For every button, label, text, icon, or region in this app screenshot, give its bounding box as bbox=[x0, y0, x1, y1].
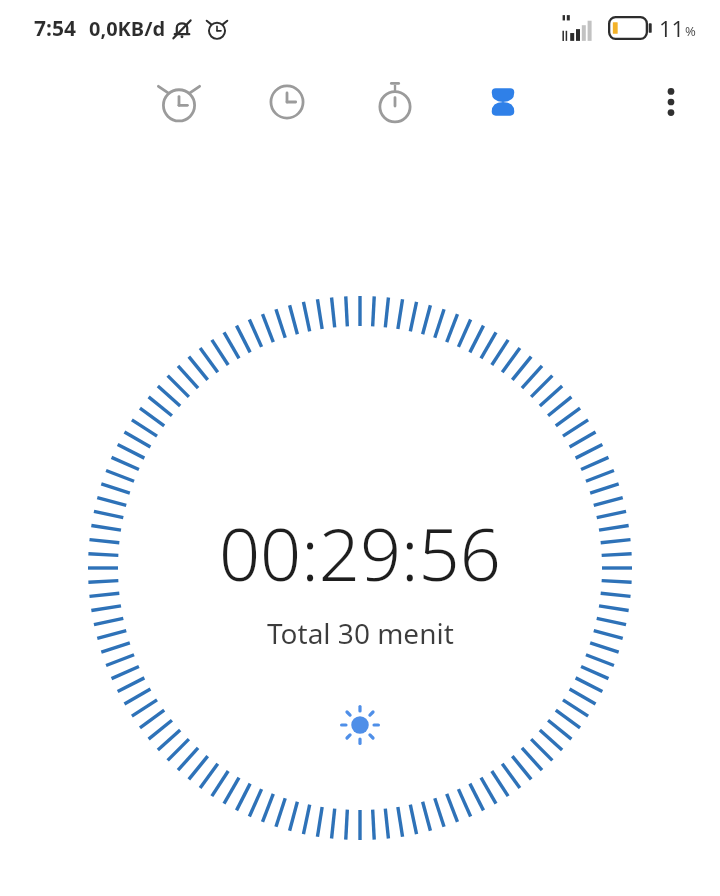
button[interactable]: World clock bbox=[256, 71, 318, 133]
staticText: 0,0KB/d bbox=[89, 15, 166, 42]
button[interactable]: Timer bbox=[472, 71, 534, 133]
staticText: 7:54 bbox=[34, 14, 76, 43]
staticText: 00:29:56 bbox=[219, 504, 501, 602]
button[interactable]: Screen brightness bbox=[331, 696, 389, 754]
button[interactable]: More options bbox=[642, 73, 700, 131]
staticText: 11 bbox=[659, 13, 685, 43]
button[interactable]: Timer dial bbox=[0, 0, 720, 896]
staticText: % bbox=[685, 22, 696, 40]
staticText: Total 30 menit bbox=[267, 614, 454, 652]
button[interactable]: Stopwatch bbox=[364, 71, 426, 133]
button[interactable]: Alarm bbox=[148, 71, 210, 133]
